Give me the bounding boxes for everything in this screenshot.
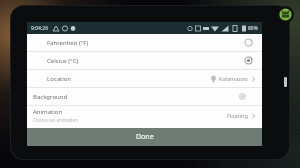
- staticText: Animation: [33, 108, 63, 116]
- button[interactable]: Celsius (°C): [27, 52, 262, 69]
- staticText: Floating: [227, 112, 248, 119]
- staticText: Background: [33, 93, 68, 101]
- button[interactable]: Fahrenheit (°F): [27, 34, 262, 51]
- staticText: Choose an animation: [33, 117, 78, 123]
- button[interactable]: Location: [27, 70, 262, 87]
- staticText: Location: [47, 75, 72, 83]
- button[interactable]: Android: [277, 6, 294, 23]
- staticText: Done: [136, 132, 154, 142]
- staticText: Kalamazoo: [219, 75, 248, 82]
- staticText: 80%: [248, 25, 258, 32]
- staticText: Celsius (°C): [47, 57, 79, 65]
- button[interactable]: Done: [27, 128, 262, 146]
- button[interactable]: Background: [27, 88, 262, 105]
- staticText: Fahrenheit (°F): [47, 39, 89, 47]
- staticText: 9:04:26: [31, 25, 49, 32]
- button[interactable]: Animation: [27, 106, 262, 125]
